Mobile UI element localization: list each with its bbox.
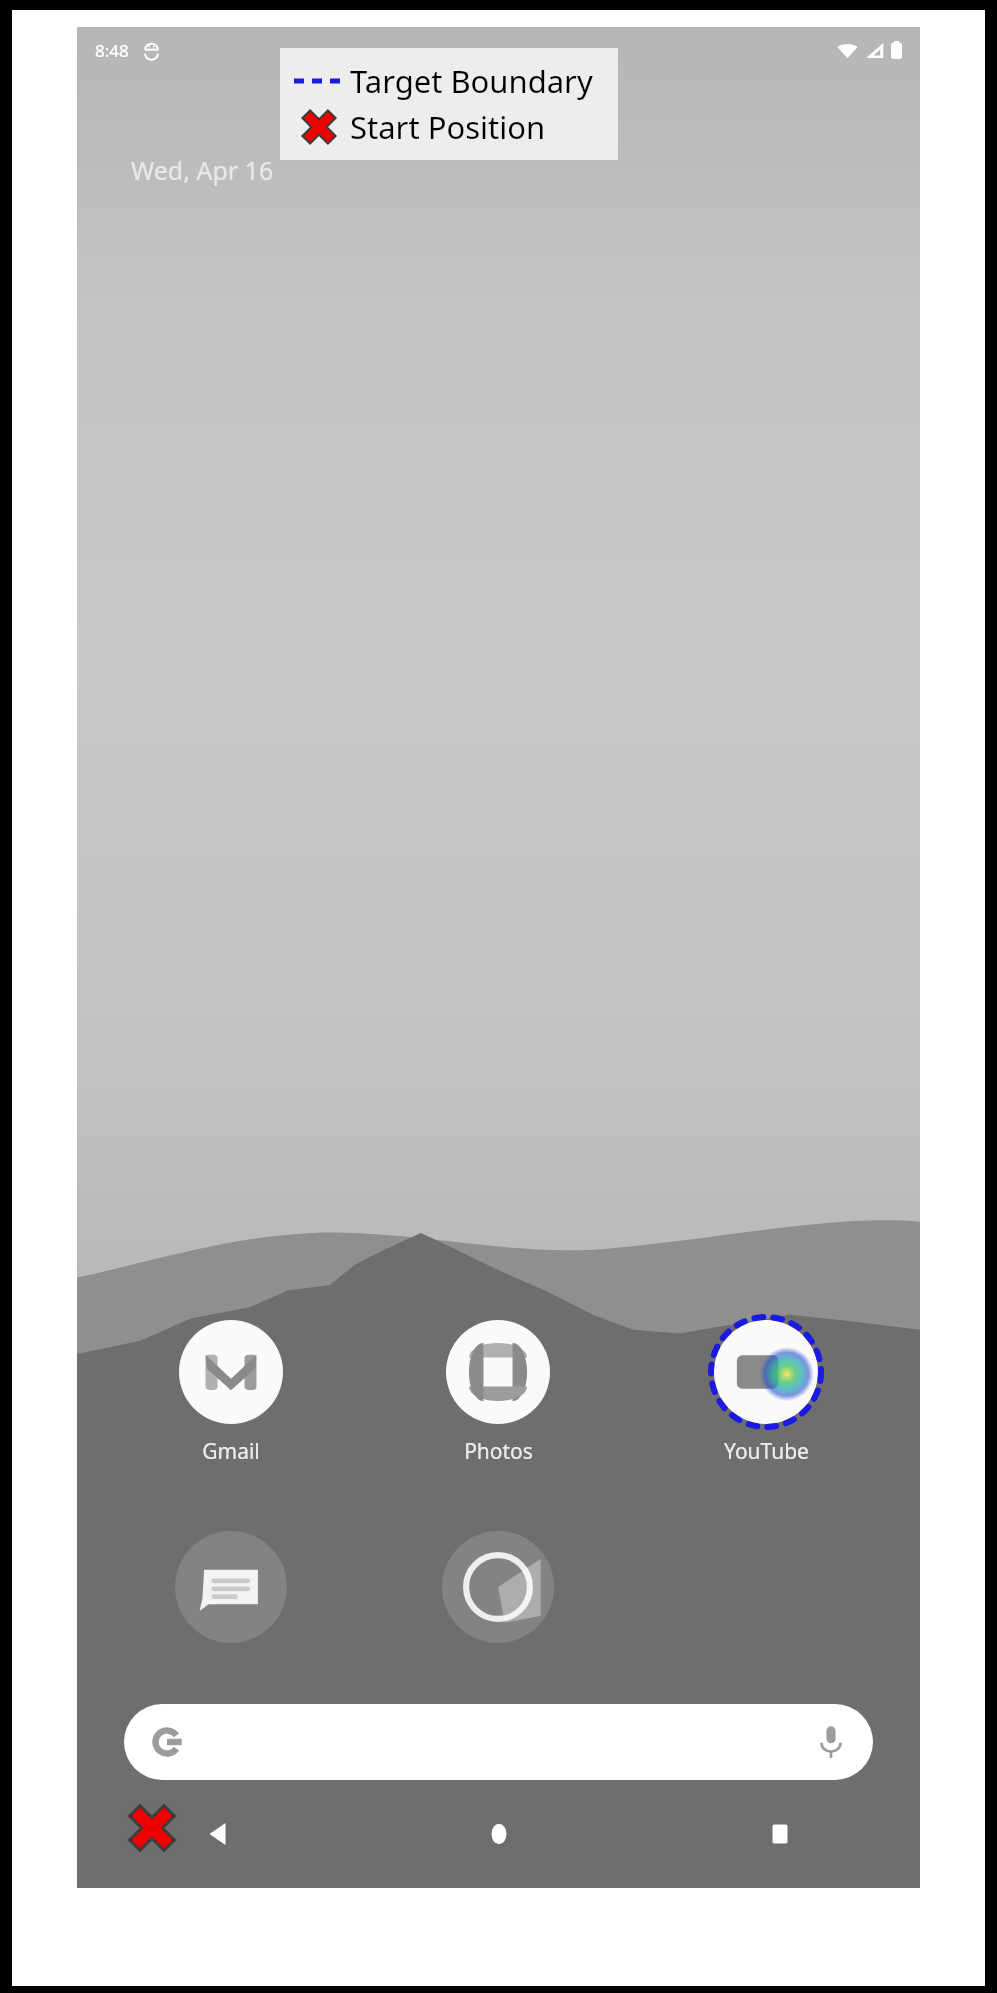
button[interactable]: YouTube <box>632 1313 900 1466</box>
button[interactable]: Gmail <box>97 1313 364 1466</box>
button[interactable]: Home <box>358 1780 639 1888</box>
staticText: Gmail <box>202 1437 260 1466</box>
staticText: YouTube <box>724 1437 809 1466</box>
staticText: Start Position <box>350 106 546 148</box>
button[interactable]: Back <box>77 1780 358 1888</box>
button[interactable]: Wed, Apr 16 <box>131 153 274 187</box>
staticText: Photos <box>464 1437 533 1466</box>
button[interactable]: Messages <box>97 1528 364 1646</box>
button[interactable]: Chrome <box>364 1528 632 1646</box>
button[interactable]: Google search <box>124 1704 873 1780</box>
staticText: Wed, Apr 16 <box>131 153 274 187</box>
button[interactable]: Photos <box>364 1313 632 1466</box>
staticText: 8:48 <box>95 39 129 62</box>
button[interactable]: Recents <box>639 1780 920 1888</box>
staticText: Target Boundary <box>350 60 593 102</box>
